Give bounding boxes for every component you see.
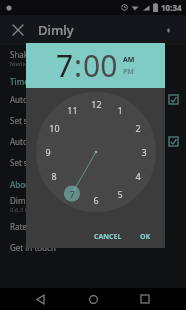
button[interactable]: CANCEL — [88, 229, 128, 245]
staticText: : — [74, 45, 83, 86]
staticText: 9 — [45, 146, 51, 158]
staticText: Get in touch — [10, 242, 56, 253]
staticText: Set stop time — [10, 157, 60, 168]
button[interactable]: Auto start — [0, 89, 186, 110]
staticText: 5 — [117, 188, 123, 200]
staticText: 4 — [135, 170, 141, 182]
staticText: Auto start — [10, 94, 48, 105]
button[interactable]: Close — [8, 20, 28, 40]
staticText: Set start time — [10, 115, 61, 126]
staticText: About — [10, 179, 34, 190]
button[interactable]: Rate this app — [0, 216, 186, 237]
button[interactable]: More options — [158, 20, 178, 40]
staticText: 8 — [51, 170, 57, 182]
button[interactable]: Shake motion sensitivity — [0, 46, 186, 70]
button[interactable]: Recents — [134, 288, 156, 310]
staticText: 11 — [67, 104, 78, 116]
staticText: 6 — [93, 194, 99, 206]
button[interactable]: 00 — [83, 45, 118, 86]
staticText: 0.6.3 Free — [10, 206, 38, 214]
staticText: 1 — [117, 104, 123, 116]
staticText: CANCEL — [94, 232, 122, 242]
staticText: Rate this app — [10, 221, 60, 232]
button[interactable]: Auto stop — [0, 131, 186, 152]
button[interactable]: Home — [82, 288, 104, 310]
staticText: Auto stop — [10, 136, 47, 147]
staticText: Medium — [10, 60, 34, 68]
staticText: Dimly — [10, 195, 32, 206]
button[interactable]: OK — [134, 229, 157, 245]
button[interactable]: Dimly — [0, 192, 186, 216]
button[interactable]: Get in touch — [0, 237, 186, 258]
button[interactable]: 7 — [56, 45, 74, 86]
staticText: OK — [140, 232, 151, 242]
button[interactable]: Set start time — [0, 110, 186, 131]
staticText: 10:34 — [161, 2, 182, 13]
button[interactable]: AM — [123, 55, 135, 65]
staticText: Timer — [10, 76, 33, 87]
staticText: 10 — [49, 122, 60, 134]
staticText: Shake motion sensitivity — [10, 49, 102, 60]
button[interactable]: Back — [30, 288, 52, 310]
staticText: 2 — [135, 122, 141, 134]
button[interactable]: PM — [123, 67, 134, 77]
staticText: Dimly — [38, 21, 74, 39]
button[interactable]: Set stop time — [0, 152, 186, 173]
staticText: 7 — [69, 188, 75, 200]
staticText: 3 — [141, 146, 147, 158]
staticText: 12 — [91, 98, 102, 110]
